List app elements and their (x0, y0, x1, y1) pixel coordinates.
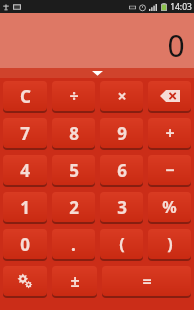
staticText: % (162, 196, 177, 218)
staticText: 1 (20, 196, 30, 219)
button[interactable]: 8 (52, 118, 95, 148)
button[interactable]: 5 (52, 155, 95, 185)
staticText: 6 (117, 159, 127, 182)
staticText: 0 (20, 233, 30, 256)
button[interactable]: Settings (3, 266, 47, 296)
button[interactable]: % (148, 192, 191, 222)
button[interactable]: 2 (52, 192, 95, 222)
button[interactable]: 0 (3, 229, 47, 259)
staticText: ) (167, 233, 173, 255)
staticText: = (142, 270, 152, 292)
button[interactable]: + (148, 118, 191, 148)
button[interactable]: 3 (100, 192, 143, 222)
button[interactable]: × (100, 81, 143, 111)
button[interactable]: ± (52, 266, 97, 296)
staticText: + (165, 122, 175, 144)
button[interactable]: ( (100, 229, 143, 259)
button[interactable]: Backspace (148, 81, 191, 111)
button[interactable]: 4 (3, 155, 47, 185)
staticText: 4 (20, 159, 30, 182)
button[interactable]: − (148, 155, 191, 185)
staticText: 3 (117, 196, 127, 219)
button[interactable]: 1 (3, 192, 47, 222)
staticText: 0 (167, 25, 185, 66)
staticText: . (71, 233, 76, 256)
button[interactable]: . (52, 229, 95, 259)
button[interactable]: 9 (100, 118, 143, 148)
staticText: ( (119, 233, 125, 255)
staticText: 5 (69, 159, 79, 182)
staticText: ± (70, 270, 80, 292)
button[interactable]: ÷ (52, 81, 95, 111)
staticText: 9 (117, 122, 127, 145)
staticText: 14:03 (170, 1, 192, 13)
staticText: ÷ (69, 85, 79, 107)
button[interactable]: 6 (100, 155, 143, 185)
button[interactable]: C (3, 81, 47, 111)
button[interactable]: ) (148, 229, 191, 259)
button[interactable]: Expand history (0, 68, 194, 78)
staticText: 7 (20, 122, 30, 145)
staticText: 8 (69, 122, 79, 145)
button[interactable]: = (102, 266, 191, 296)
staticText: C (20, 85, 31, 108)
staticText: × (117, 85, 127, 107)
staticText: − (165, 159, 175, 181)
button[interactable]: 7 (3, 118, 47, 148)
staticText: 2 (69, 196, 79, 219)
